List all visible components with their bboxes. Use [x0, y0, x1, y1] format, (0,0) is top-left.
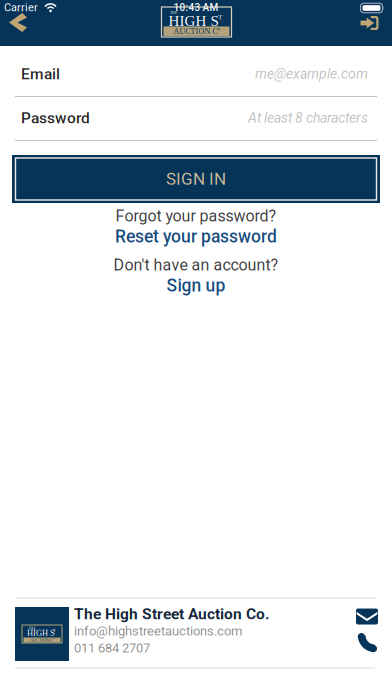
staticText: Forgot your password? [115, 207, 276, 225]
staticText: Carrier [4, 1, 38, 14]
staticText: Sign up [166, 275, 225, 296]
staticText: HIGH S [168, 13, 218, 29]
staticText: Don't have an account? [113, 256, 278, 274]
staticText: 011 684 2707 [74, 640, 150, 656]
staticText: AUCTION Cº [173, 27, 219, 36]
staticText: T [53, 628, 56, 633]
staticText: Password [21, 109, 90, 127]
button[interactable] [352, 604, 382, 628]
staticText: At least 8 characters [248, 110, 368, 126]
staticText: info@highstreetauctions.com [74, 623, 242, 639]
staticText: T [218, 13, 222, 21]
staticText: The High Street Auction Co. [74, 605, 269, 623]
staticText: THE [28, 627, 35, 630]
button[interactable] [354, 10, 384, 36]
staticText: Email [21, 65, 60, 83]
staticText: HIGH S [27, 628, 55, 638]
staticText: Reset your password [115, 226, 277, 247]
staticText: AUCTION Cº [30, 638, 54, 642]
button[interactable] [1, 7, 35, 38]
staticText: me@example.com [255, 66, 368, 82]
button[interactable]: Reset your password [105, 223, 287, 250]
button[interactable]: SIGN IN [12, 155, 380, 203]
staticText: THE [170, 11, 177, 15]
button[interactable] [353, 629, 381, 657]
staticText: SIGN IN [166, 169, 226, 189]
staticText: 10:43 AM [173, 2, 218, 13]
button[interactable]: Sign up [156, 272, 235, 299]
